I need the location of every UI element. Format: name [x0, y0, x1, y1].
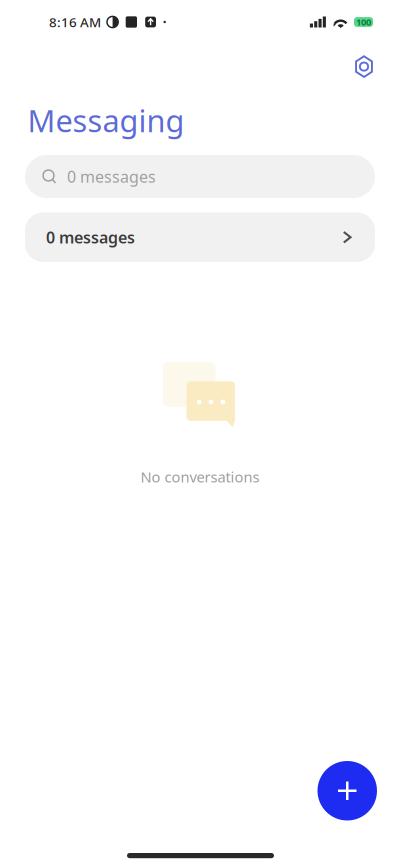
button[interactable]: 0 messages — [25, 212, 375, 262]
button[interactable]: Settings — [346, 49, 382, 85]
staticText: 100 — [356, 16, 371, 28]
button[interactable]: New message — [317, 761, 377, 820]
staticText: 8:16 AM — [49, 13, 101, 31]
staticText: No conversations — [140, 467, 259, 486]
button[interactable]: 0 messages — [25, 155, 375, 198]
staticText: 0 messages — [46, 227, 135, 248]
staticText: Messaging — [27, 100, 184, 141]
staticText: 0 messages — [67, 166, 156, 187]
